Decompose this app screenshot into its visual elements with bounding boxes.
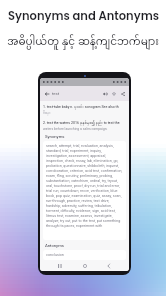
button[interactable]: Back xyxy=(104,261,114,271)
button[interactable]: Share xyxy=(118,89,127,98)
button[interactable]: Favorite xyxy=(109,89,118,98)
button[interactable]: Home xyxy=(80,261,90,271)
staticText: ဗီဇမှာ xyxy=(43,111,51,116)
staticText: Antonyms xyxy=(45,243,64,248)
button[interactable]: Back xyxy=(42,89,51,98)
staticText: conclusion xyxy=(46,253,64,257)
button[interactable]: Recents xyxy=(55,261,65,271)
staticText: အဓိပ္ပါယ်တူ နှင့် ဆန့်ကျင်ဘက်များ xyxy=(7,31,159,54)
button[interactable]: Pronounce xyxy=(100,89,109,98)
staticText: waters before launching a sales campaign… xyxy=(43,127,108,131)
staticText: Synonyms and Antonyms xyxy=(8,8,159,24)
staticText: test xyxy=(52,91,60,96)
staticText: Synonyms xyxy=(45,134,65,139)
staticText: search, attempt, trial, evaluation, anal… xyxy=(46,144,123,228)
staticText: 1. test-tube baby n. ပုလင်း sonogram See… xyxy=(43,103,119,111)
staticText: 2. test the waters 2016 ခုနှစ်မှစ၍ နည်း … xyxy=(43,119,120,127)
